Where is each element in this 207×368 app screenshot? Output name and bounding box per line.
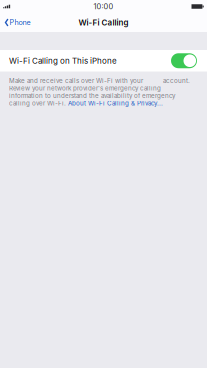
- staticText: Review your network provider's emergency…: [9, 84, 161, 92]
- staticText: Phone: [10, 18, 31, 27]
- staticText: Wi-Fi Calling on This iPhone: [9, 56, 117, 66]
- staticText: Make and receive calls over Wi-Fi with y…: [9, 77, 190, 84]
- button[interactable]: Wi-Fi Calling on This iPhone: [0, 50, 207, 71]
- staticText: 10:00: [93, 2, 113, 11]
- button[interactable]: Phone: [0, 13, 35, 32]
- staticText: information to understand the availabili…: [9, 92, 175, 99]
- staticText: calling over Wi-Fi.: [9, 99, 68, 107]
- staticText: Wi-Fi Calling: [78, 18, 128, 27]
- staticText: About Wi-Fi Calling & Privacy...: [68, 99, 163, 107]
- button[interactable]: About Wi-Fi Calling & Privacy...: [68, 99, 163, 107]
